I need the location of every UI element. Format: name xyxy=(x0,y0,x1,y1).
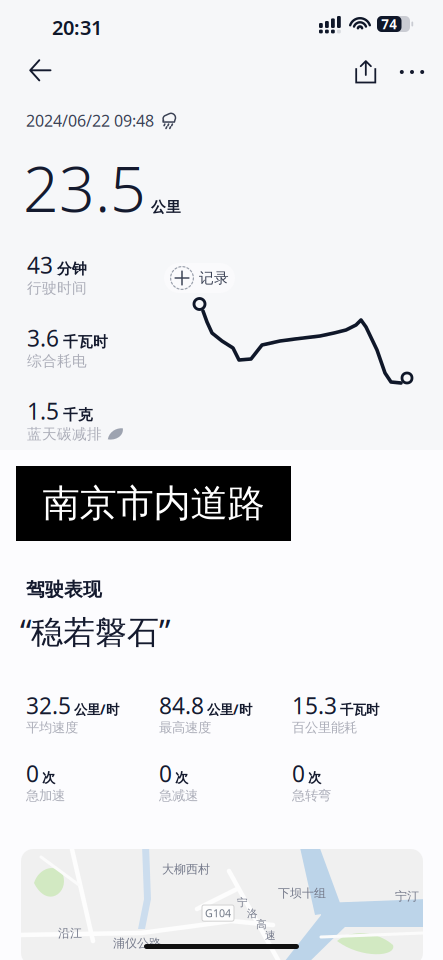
staticText: 74 xyxy=(381,15,397,33)
staticText: “稳若磐石” xyxy=(20,610,170,652)
staticText: 百公里能耗 xyxy=(292,719,357,736)
staticText: 15.3 xyxy=(292,690,337,720)
staticText: 洛 xyxy=(247,907,258,920)
staticText: 蓝天碳减排 xyxy=(27,425,102,443)
staticText: 0 xyxy=(292,758,305,788)
staticText: 速 xyxy=(265,929,276,942)
staticText: 0 xyxy=(159,758,172,788)
button[interactable]: Share xyxy=(343,48,389,96)
staticText: 次 xyxy=(308,770,321,786)
staticText: 大柳西村 xyxy=(162,862,210,877)
staticText: 分钟 xyxy=(57,260,87,278)
staticText: 3.6 xyxy=(27,323,59,353)
staticText: 行驶时间 xyxy=(27,279,87,297)
staticText: 32.5 xyxy=(26,690,71,720)
staticText: G104 xyxy=(205,906,231,920)
staticText: 驾驶表现 xyxy=(26,578,102,601)
button[interactable]: More options xyxy=(388,48,436,96)
staticText: 43 xyxy=(27,250,53,280)
staticText: 20:31 xyxy=(52,14,102,41)
staticText: 下坝十组 xyxy=(278,886,326,901)
staticText: 急转弯 xyxy=(292,787,331,804)
staticText: 84.8 xyxy=(159,690,204,720)
staticText: 公里 xyxy=(151,198,181,216)
staticText: 公里/时 xyxy=(74,700,119,718)
staticText: 2024/06/22 09:48 xyxy=(26,110,154,131)
staticText: 公里/时 xyxy=(207,700,252,718)
staticText: 宁 xyxy=(237,896,248,909)
staticText: 沿江 xyxy=(58,926,82,941)
staticText: 次 xyxy=(42,770,55,786)
staticText: 高 xyxy=(256,918,267,931)
staticText: 宁汀 xyxy=(395,889,419,904)
staticText: 记录 xyxy=(199,269,229,287)
staticText: 千瓦时 xyxy=(340,702,379,718)
staticText: 1.5 xyxy=(27,396,59,426)
staticText: 急加速 xyxy=(26,787,65,804)
button[interactable]: Back xyxy=(17,47,63,94)
staticText: 综合耗电 xyxy=(27,352,87,370)
button[interactable]: 记录 xyxy=(164,263,235,293)
staticText: 最高速度 xyxy=(159,719,211,736)
staticText: 千瓦时 xyxy=(63,333,108,351)
staticText: 0 xyxy=(26,758,39,788)
staticText: 急减速 xyxy=(159,787,198,804)
staticText: 次 xyxy=(175,770,188,786)
staticText: 千克 xyxy=(63,406,93,424)
staticText: 南京市内道路 xyxy=(42,481,264,526)
staticText: 23.5 xyxy=(23,146,146,229)
staticText: 浦仪公路 xyxy=(113,936,161,951)
staticText: 平均速度 xyxy=(26,719,78,736)
